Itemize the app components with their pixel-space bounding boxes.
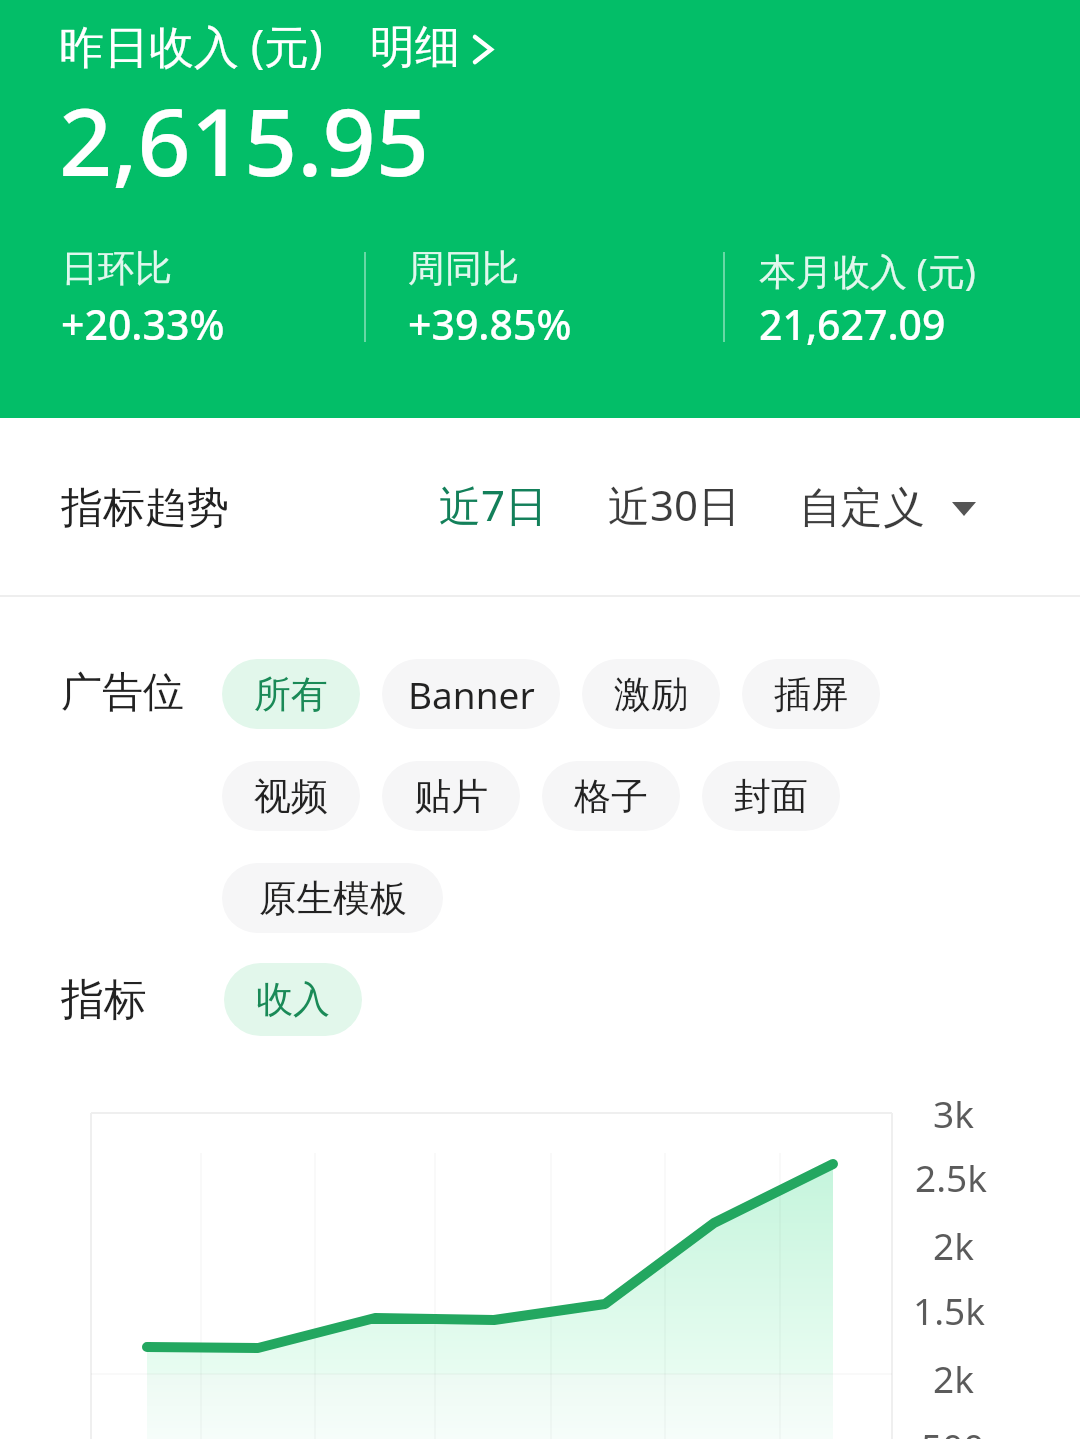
staticText: 本月收入 (元) <box>759 245 976 296</box>
button[interactable]: 近7日 <box>422 471 564 537</box>
staticText: 原生模板 <box>259 875 407 922</box>
staticText: 2,615.95 <box>59 77 429 204</box>
staticText: 近7日 <box>439 476 548 533</box>
button[interactable]: 所有 <box>222 659 360 729</box>
staticText: 封面 <box>734 773 808 820</box>
staticText: 近30日 <box>608 476 741 533</box>
staticText: 指标 <box>61 973 147 1027</box>
staticText: 收入 <box>256 976 330 1023</box>
staticText: +20.33% <box>61 296 225 352</box>
button[interactable]: 自定义 <box>786 472 991 538</box>
staticText: 21,627.09 <box>759 296 946 352</box>
staticText: 500 <box>921 1421 985 1439</box>
button[interactable]: 明细 <box>360 8 505 70</box>
staticText: 所有 <box>254 671 328 718</box>
staticText: 贴片 <box>414 773 488 820</box>
staticText: 1.5k <box>913 1285 986 1335</box>
staticText: +39.85% <box>408 296 572 352</box>
staticText: 激励 <box>614 671 688 718</box>
staticText: Banner <box>408 669 535 719</box>
staticText: 2.5k <box>915 1152 988 1202</box>
staticText: 日环比 <box>61 245 172 292</box>
button[interactable]: 视频 <box>222 761 360 831</box>
staticText: 2k <box>933 1220 974 1270</box>
staticText: 视频 <box>254 773 328 820</box>
button[interactable]: 原生模板 <box>222 863 443 933</box>
button[interactable]: 激励 <box>582 659 720 729</box>
other: 展开自定义日期 <box>952 502 976 516</box>
staticText: 广告位 <box>61 667 184 719</box>
staticText: 3k <box>933 1088 974 1138</box>
staticText: 格子 <box>574 773 648 820</box>
staticText: 自定义 <box>799 482 925 535</box>
staticText: 插屏 <box>774 671 848 718</box>
staticText: 周同比 <box>408 245 519 292</box>
staticText: 昨日收入 (元) <box>59 15 323 76</box>
button[interactable]: 格子 <box>542 761 680 831</box>
button[interactable]: 插屏 <box>742 659 880 729</box>
button[interactable]: 封面 <box>702 761 840 831</box>
staticText: 2k <box>933 1353 974 1403</box>
staticText: 指标趋势 <box>61 482 229 535</box>
button[interactable]: Banner <box>382 659 560 729</box>
button[interactable]: 收入 <box>224 963 362 1036</box>
button[interactable]: 近30日 <box>592 471 756 537</box>
button[interactable]: 贴片 <box>382 761 520 831</box>
staticText: 明细 <box>370 19 460 76</box>
